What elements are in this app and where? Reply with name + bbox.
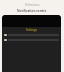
staticText: Preferences <box>25 3 40 7</box>
button[interactable] <box>4 39 59 41</box>
staticText: Notification centre <box>17 9 47 13</box>
button[interactable] <box>4 34 59 36</box>
staticText: Settings <box>26 28 37 32</box>
